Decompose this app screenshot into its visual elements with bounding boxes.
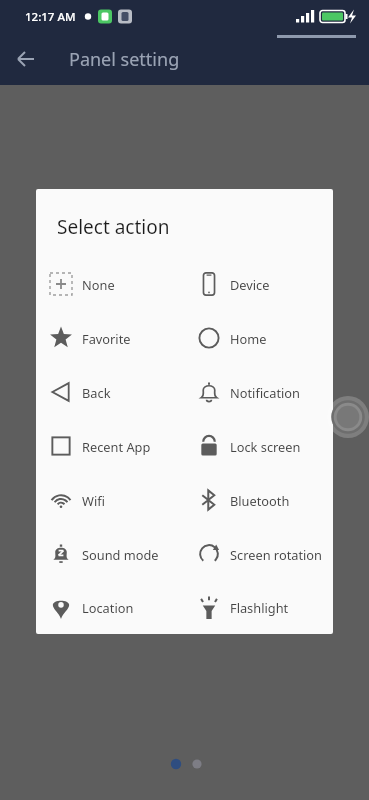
staticText: None xyxy=(82,276,115,293)
staticText: Sound mode xyxy=(82,546,159,563)
staticText: 12:17 AM xyxy=(25,9,76,25)
button[interactable]: Sound mode xyxy=(36,527,184,581)
button[interactable]: Recent App xyxy=(36,419,184,473)
staticText: Bluetooth xyxy=(230,492,290,509)
staticText: Favorite xyxy=(82,330,131,347)
button[interactable]: Back xyxy=(36,365,184,419)
button[interactable]: Lock screen xyxy=(184,419,333,473)
button[interactable]: Back xyxy=(10,43,42,75)
staticText: Device xyxy=(230,276,270,293)
staticText: Notification xyxy=(230,384,300,401)
button[interactable]: Home xyxy=(184,311,333,365)
button[interactable]: None xyxy=(36,257,184,311)
staticText: Flashlight xyxy=(230,599,289,616)
staticText: Recent App xyxy=(82,438,151,455)
staticText: Lock screen xyxy=(230,438,301,455)
button[interactable]: Location xyxy=(36,581,184,634)
staticText: Back xyxy=(82,384,111,401)
button[interactable]: Panel handle xyxy=(327,396,369,438)
staticText: Home xyxy=(230,330,267,347)
staticText: Panel setting xyxy=(69,47,180,72)
button[interactable]: Device xyxy=(184,257,333,311)
button[interactable]: Favorite xyxy=(36,311,184,365)
staticText: Wifi xyxy=(82,492,105,509)
button[interactable]: Flashlight xyxy=(184,581,333,634)
button[interactable]: Bluetooth xyxy=(184,473,333,527)
button[interactable]: Wifi xyxy=(36,473,184,527)
staticText: Screen rotation xyxy=(230,546,323,563)
staticText: Select action xyxy=(57,214,170,240)
staticText: Location xyxy=(82,599,134,616)
button[interactable]: Notification xyxy=(184,365,333,419)
button[interactable]: Screen rotation xyxy=(184,527,333,581)
